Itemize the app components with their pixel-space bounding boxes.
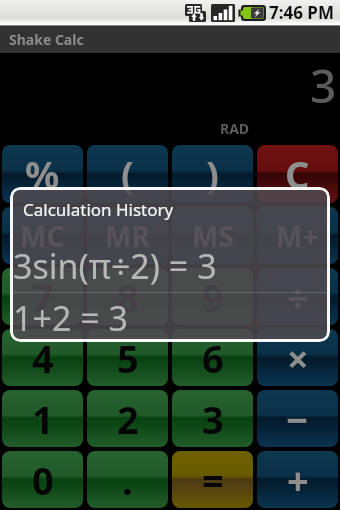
- staticText: MC: [20, 217, 65, 255]
- button[interactable]: 7: [2, 268, 83, 325]
- button[interactable]: ): [172, 145, 253, 203]
- staticText: 6: [202, 332, 224, 384]
- button[interactable]: 5: [87, 329, 168, 386]
- staticText: +: [287, 454, 309, 506]
- staticText: ×: [287, 332, 309, 384]
- staticText: .: [122, 454, 133, 506]
- button[interactable]: C: [257, 145, 338, 203]
- staticText: 3: [310, 54, 337, 117]
- staticText: 4: [32, 332, 54, 384]
- staticText: Shake Calc: [9, 30, 84, 49]
- staticText: RAD: [220, 119, 250, 138]
- button[interactable]: 9: [172, 268, 253, 325]
- button[interactable]: (: [87, 145, 168, 203]
- button[interactable]: MC: [2, 207, 83, 264]
- staticText: 1+2 = 3: [13, 295, 128, 339]
- button[interactable]: 1: [2, 390, 83, 447]
- button[interactable]: MR: [87, 207, 168, 264]
- staticText: 2: [117, 393, 139, 445]
- staticText: 3sin(π÷2) = 3: [13, 243, 217, 289]
- staticText: %: [25, 148, 60, 200]
- button[interactable]: ×: [257, 329, 338, 386]
- staticText: 3: [202, 393, 224, 445]
- staticText: ÷: [287, 271, 309, 323]
- staticText: ): [206, 148, 219, 200]
- staticText: C: [285, 148, 310, 200]
- button[interactable]: +: [257, 451, 338, 508]
- staticText: MS: [192, 217, 234, 255]
- staticText: M+: [276, 217, 319, 255]
- button[interactable]: ÷: [257, 268, 338, 325]
- staticText: (: [121, 148, 134, 200]
- staticText: MR: [105, 217, 150, 255]
- staticText: Calculation History: [23, 198, 174, 221]
- staticText: =: [202, 454, 224, 506]
- button[interactable]: 6: [172, 329, 253, 386]
- staticText: 1: [32, 393, 54, 445]
- button[interactable]: MS: [172, 207, 253, 264]
- button[interactable]: M+: [257, 207, 338, 264]
- button[interactable]: 4: [2, 329, 83, 386]
- staticText: 0: [32, 454, 54, 506]
- button[interactable]: 3: [172, 390, 253, 447]
- staticText: 8: [117, 271, 139, 323]
- staticText: 9: [202, 271, 224, 323]
- button[interactable]: 2: [87, 390, 168, 447]
- staticText: −: [286, 393, 309, 445]
- button[interactable]: %: [2, 145, 83, 203]
- button[interactable]: .: [87, 451, 168, 508]
- button[interactable]: =: [172, 451, 253, 508]
- button[interactable]: 0: [2, 451, 83, 508]
- button[interactable]: 8: [87, 268, 168, 325]
- staticText: 5: [117, 332, 139, 384]
- button[interactable]: −: [257, 390, 338, 447]
- staticText: 7: [32, 271, 54, 323]
- staticText: 7:46 PM: [269, 1, 334, 24]
